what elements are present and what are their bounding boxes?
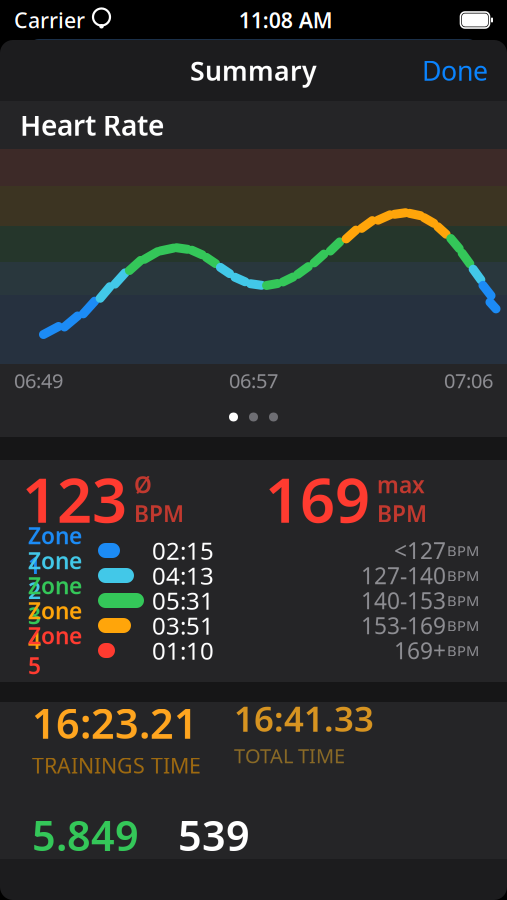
staticText: Zone 5: [28, 620, 82, 681]
staticText: <127: [394, 535, 446, 565]
staticText: 03:51: [152, 610, 214, 641]
staticText: 02:15: [152, 535, 214, 566]
staticText: Zone 4: [28, 595, 82, 656]
staticText: TRAININGS TIME: [32, 751, 201, 779]
staticText: BPM: [447, 616, 479, 635]
staticText: 140-153: [361, 585, 446, 615]
staticText: 16:23.21: [32, 695, 198, 750]
staticText: 153-169: [361, 610, 446, 640]
staticText: Carrier: [14, 6, 85, 34]
staticText: 01:10: [152, 635, 214, 666]
staticText: 123: [22, 458, 127, 540]
staticText: 11:08 AM: [239, 6, 333, 34]
staticText: BPM: [447, 566, 479, 585]
staticText: 06:57: [229, 367, 278, 394]
staticText: 07:06: [444, 367, 493, 394]
staticText: BPM: [447, 641, 479, 660]
staticText: Zone 2: [28, 545, 82, 606]
staticText: Zone 1: [28, 520, 82, 581]
button[interactable]: Done: [403, 42, 507, 99]
staticText: 127-140: [361, 560, 446, 590]
staticText: Heart Rate: [20, 106, 164, 144]
staticText: 169+: [394, 635, 446, 665]
staticText: BPM: [377, 498, 427, 529]
staticText: 5.849: [32, 807, 139, 862]
staticText: 169: [265, 458, 370, 540]
staticText: Summary: [190, 53, 317, 88]
staticText: 05:31: [152, 585, 214, 616]
staticText: TOTAL TIME: [234, 742, 345, 769]
staticText: Ø: [134, 469, 152, 499]
staticText: 04:13: [152, 560, 214, 591]
staticText: 16:41.33: [234, 695, 374, 741]
staticText: 06:49: [14, 367, 63, 394]
staticText: Zone 3: [28, 570, 82, 631]
staticText: 539: [178, 807, 250, 862]
staticText: BPM: [447, 541, 479, 560]
staticText: BPM: [447, 591, 479, 610]
staticText: max: [377, 469, 425, 499]
staticText: Done: [422, 53, 488, 88]
staticText: BPM: [134, 498, 184, 529]
